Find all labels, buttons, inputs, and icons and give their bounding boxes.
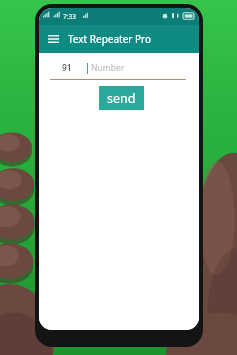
staticText: Text Repeater Pro (68, 32, 152, 46)
staticText: send (107, 90, 136, 107)
button[interactable]: Open navigation drawer (43, 29, 63, 49)
button[interactable]: send (99, 86, 144, 110)
staticText: 7:33 (63, 12, 76, 21)
staticText: Number (91, 62, 125, 74)
button[interactable]: Number (87, 61, 185, 74)
button[interactable]: 91 (59, 62, 75, 74)
staticText: 91 (62, 62, 72, 74)
